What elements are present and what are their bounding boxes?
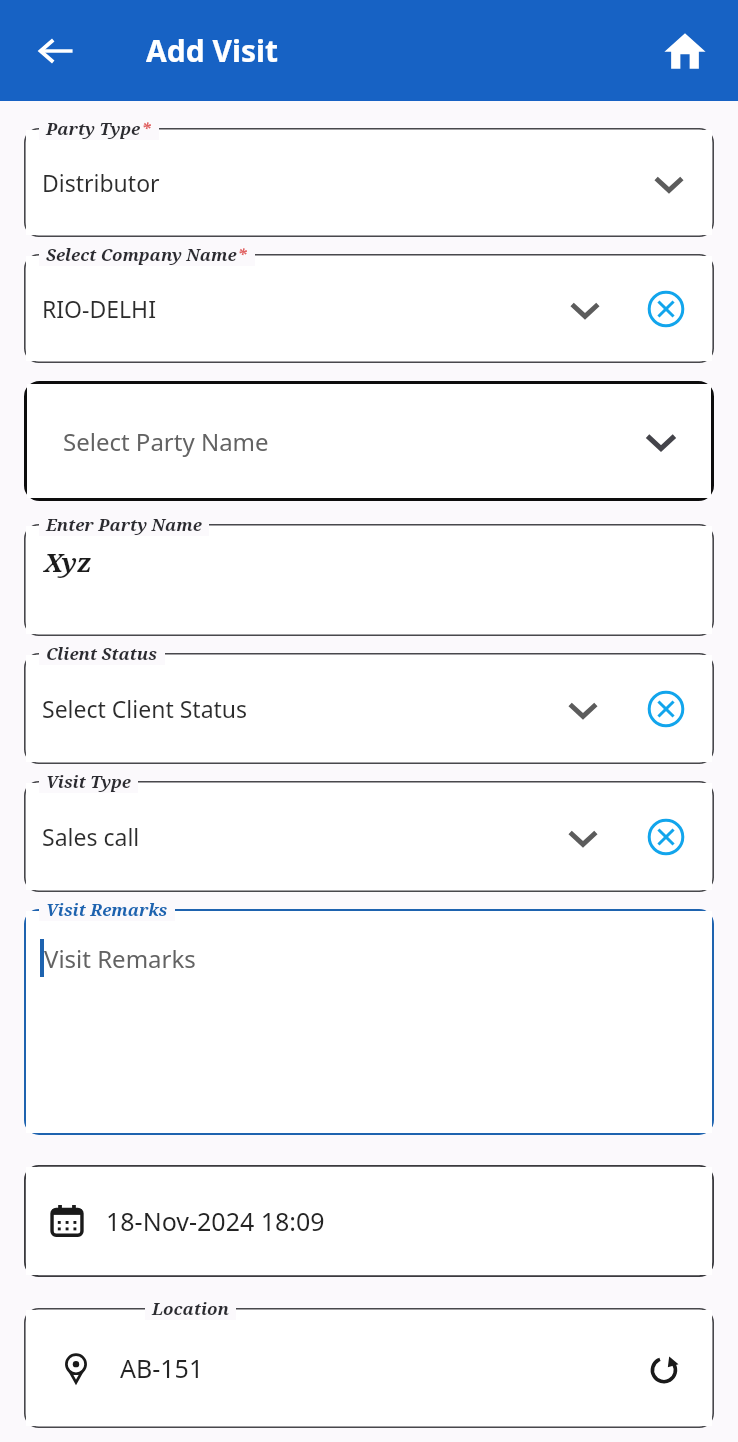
staticText: Sales call [42, 821, 140, 852]
button[interactable]: Clear company name [642, 285, 690, 333]
staticText: RIO-DELHI [42, 293, 156, 324]
staticText: AB-151 [120, 1351, 204, 1385]
staticText: Location [152, 1297, 229, 1320]
button[interactable]: Select Client Status [24, 642, 714, 764]
button[interactable]: Clear client status [642, 685, 690, 733]
button[interactable]: Visit Remarks [24, 898, 714, 1135]
button[interactable]: 18-Nov-2024 18:09 [24, 1165, 714, 1277]
staticText: Select Client Status [42, 693, 248, 724]
staticText: Add Visit [146, 30, 278, 71]
button[interactable]: Clear visit type [642, 813, 690, 861]
button[interactable]: Home [656, 22, 714, 80]
staticText: * [141, 117, 152, 140]
staticText: Xyz [44, 544, 92, 579]
staticText: Select Company Name [46, 243, 237, 266]
button[interactable]: AB-151 [24, 1297, 714, 1428]
button[interactable]: Refresh location [642, 1345, 688, 1391]
staticText: * [237, 243, 248, 266]
button[interactable]: Back [26, 22, 84, 80]
staticText: Select Party Name [63, 425, 269, 458]
staticText: Visit Type [46, 770, 131, 793]
button[interactable]: Xyz [24, 513, 714, 636]
staticText: Client Status [46, 642, 158, 665]
button[interactable]: Distributor [24, 117, 714, 237]
staticText: 18-Nov-2024 18:09 [106, 1204, 325, 1238]
button[interactable]: RIO-DELHI [24, 243, 714, 363]
staticText: Visit Remarks [46, 898, 168, 921]
staticText: Party Type [46, 117, 141, 140]
button[interactable]: Select Party Name [24, 381, 714, 501]
staticText: Distributor [42, 167, 160, 198]
staticText: Visit Remarks [44, 942, 196, 975]
button[interactable]: Sales call [24, 770, 714, 892]
staticText: Enter Party Name [46, 513, 202, 536]
